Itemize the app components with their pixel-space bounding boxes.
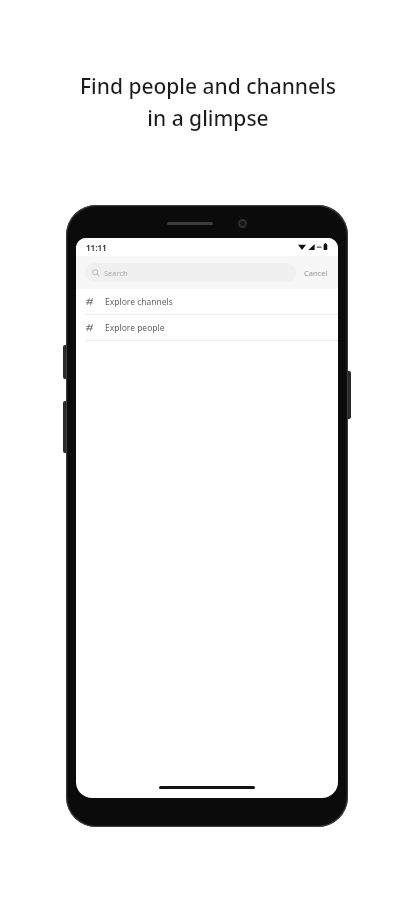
staticText: Explore channels — [105, 296, 173, 308]
button[interactable]: Search — [85, 263, 296, 282]
staticText: Cancel — [304, 268, 328, 278]
staticText: Explore people — [105, 322, 165, 334]
button[interactable]: Cancel — [303, 265, 329, 281]
staticText: Search — [104, 268, 128, 278]
staticText: 11:11 — [86, 242, 107, 253]
staticText: Find people and channels — [80, 72, 336, 101]
button[interactable]: Explore channels — [76, 289, 338, 314]
button[interactable]: Explore people — [76, 315, 338, 340]
staticText: in a glimpse — [147, 104, 269, 133]
